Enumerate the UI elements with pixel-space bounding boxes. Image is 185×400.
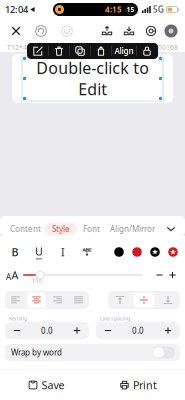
staticText: 13.0: [32, 277, 42, 284]
button[interactable]: Align middle: [132, 291, 156, 309]
button[interactable]: Red star: [164, 243, 182, 261]
button[interactable]: Italic: [51, 243, 75, 261]
staticText: 0.0: [132, 325, 144, 336]
button[interactable]: Align right: [47, 291, 68, 309]
button[interactable]: Align left: [5, 291, 26, 309]
staticText: ABC: [82, 246, 91, 254]
button[interactable]: Account: [163, 21, 179, 41]
staticText: Line spacing: [100, 315, 130, 322]
button[interactable]: Align: [112, 43, 136, 58]
button[interactable]: Black star: [146, 243, 164, 261]
staticText: 12:04: [5, 3, 28, 16]
button[interactable]: Align center: [26, 291, 47, 309]
button[interactable]: Decrease Line spacing: [96, 323, 120, 338]
staticText: Print: [133, 378, 157, 392]
button[interactable]: Upload: [98, 21, 116, 41]
staticText: Save: [41, 378, 64, 392]
button[interactable]: Red: [128, 243, 146, 261]
button[interactable]: Download: [120, 21, 138, 41]
staticText: Kerning: [9, 315, 27, 322]
staticText: A: [11, 268, 18, 282]
staticText: 5G: [153, 4, 164, 15]
staticText: 1000168: [150, 43, 178, 52]
staticText: A: [6, 271, 11, 282]
staticText: T12*40:: [7, 43, 33, 52]
button[interactable]: Content: [6, 222, 45, 235]
button[interactable]: Delete: [49, 43, 69, 58]
staticText: U: [35, 244, 43, 258]
staticText: I: [61, 245, 65, 259]
button[interactable]: Settings: [142, 21, 160, 41]
button[interactable]: Duplicate: [70, 43, 90, 58]
button[interactable]: Font: [77, 222, 106, 235]
button[interactable]: Wrap by word: [5, 344, 180, 361]
staticText: Double-click to Edit: [36, 57, 149, 100]
staticText: Font: [83, 224, 100, 234]
button[interactable]: Increase Kerning: [65, 323, 89, 338]
staticText: 15: [126, 5, 134, 14]
button[interactable]: Underline: [27, 243, 51, 261]
button[interactable]: Redo: [57, 21, 77, 41]
button[interactable]: Collapse: [163, 222, 179, 236]
button[interactable]: Lock: [137, 43, 157, 58]
staticText: 4:15: [105, 4, 122, 15]
button[interactable]: Increase size: [166, 266, 179, 284]
staticText: B: [11, 245, 18, 259]
staticText: Wrap by word: [11, 347, 62, 358]
button[interactable]: Justify: [68, 291, 89, 309]
button[interactable]: Edit: [28, 43, 48, 58]
button[interactable]: Save: [0, 372, 92, 398]
button[interactable]: Decrease size: [153, 266, 166, 284]
staticText: Style: [52, 224, 70, 234]
staticText: Align: [114, 46, 133, 56]
button[interactable]: Undo: [31, 21, 51, 41]
staticText: Align/Mirror: [110, 224, 155, 234]
button[interactable]: Bring forward: [91, 43, 111, 58]
button[interactable]: Decrease Kerning: [5, 323, 29, 338]
staticText: Content: [10, 224, 41, 234]
button[interactable]: Align/Mirror: [106, 222, 159, 235]
button[interactable]: Print: [92, 372, 184, 398]
button[interactable]: Strikethrough: [75, 243, 99, 261]
button[interactable]: Close: [6, 21, 26, 41]
button[interactable]: Align top: [108, 291, 132, 309]
button[interactable]: Style: [45, 222, 77, 235]
button[interactable]: Black: [110, 243, 128, 261]
button[interactable]: B: [3, 243, 27, 261]
button[interactable]: Increase Line spacing: [156, 323, 180, 338]
button[interactable]: Align bottom: [156, 291, 180, 309]
staticText: 0.0: [41, 325, 53, 336]
